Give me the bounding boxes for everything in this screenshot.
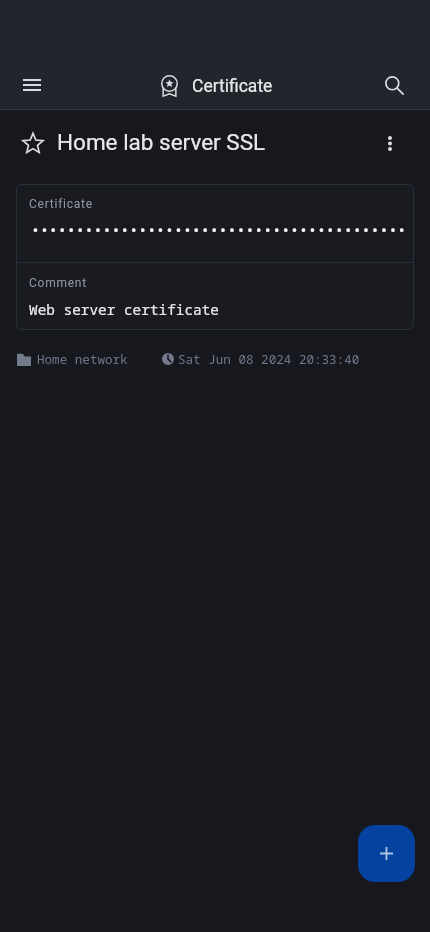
- staticText: ••••••••••••••••••••••••••••••••••••••••…: [31, 220, 407, 240]
- button[interactable]: Toggle favourite: [10, 120, 56, 166]
- button[interactable]: Search: [370, 61, 418, 109]
- button[interactable]: More options: [367, 120, 413, 166]
- button[interactable]: Sat Jun 08 2024 20:33:40: [162, 348, 360, 370]
- staticText: Web server certificate: [29, 300, 219, 320]
- button[interactable]: Add entry: [358, 825, 415, 882]
- staticText: Sat Jun 08 2024 20:33:40: [178, 351, 360, 368]
- button[interactable]: Open navigation drawer: [8, 61, 56, 109]
- button[interactable]: Certificate: [16, 184, 414, 262]
- staticText: Home network: [37, 351, 128, 368]
- staticText: Comment: [29, 276, 87, 290]
- staticText: Home lab server SSL: [57, 129, 401, 155]
- button[interactable]: Comment: [16, 263, 414, 330]
- button[interactable]: Home network: [17, 348, 128, 370]
- staticText: Certificate: [29, 197, 93, 211]
- staticText: Certificate: [192, 76, 273, 97]
